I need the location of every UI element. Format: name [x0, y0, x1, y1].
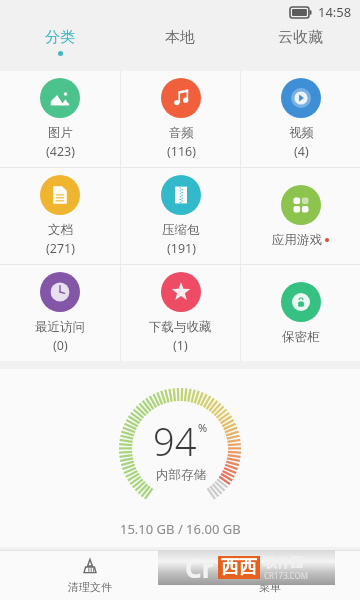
button[interactable]: 视频: [241, 71, 360, 167]
button[interactable]: 清理文件: [0, 551, 180, 600]
staticText: (1): [173, 337, 188, 354]
button[interactable]: 本地: [120, 24, 240, 60]
staticText: 94: [153, 415, 197, 467]
staticText: 图片: [48, 125, 73, 141]
staticText: (116): [167, 143, 196, 160]
button[interactable]: 文档: [0, 168, 120, 264]
staticText: 文档: [48, 222, 73, 238]
staticText: %: [198, 420, 208, 435]
staticText: 西西: [221, 556, 257, 579]
staticText: 本地: [165, 28, 195, 47]
button[interactable]: 下载与收藏: [121, 265, 240, 361]
staticText: Cr: [185, 550, 214, 585]
staticText: 14:58: [318, 3, 352, 21]
staticText: 压缩包: [162, 222, 200, 238]
staticText: 清理文件: [68, 580, 112, 594]
staticText: 视频: [289, 125, 314, 141]
staticText: 应用游戏: [272, 232, 322, 248]
staticText: 最近访问: [35, 319, 85, 335]
staticText: 云收藏: [278, 28, 323, 47]
staticText: 内部存储: [156, 467, 206, 483]
staticText: (423): [46, 143, 75, 160]
staticText: CR173.COM: [264, 570, 308, 581]
staticText: 软件园: [264, 554, 303, 570]
staticText: (0): [53, 337, 68, 354]
staticText: 保密柜: [282, 329, 320, 345]
staticText: (271): [46, 240, 75, 257]
staticText: 菜单: [259, 580, 281, 594]
staticText: 音频: [169, 125, 194, 141]
button[interactable]: 保密柜: [241, 265, 360, 361]
button[interactable]: 最近访问: [0, 265, 120, 361]
staticText: 15.10 GB / 16.00 GB: [120, 520, 241, 538]
button[interactable]: 分类: [0, 24, 120, 60]
staticText: 下载与收藏: [149, 319, 212, 335]
button[interactable]: 菜单: [180, 551, 360, 600]
button[interactable]: 云收藏: [240, 24, 360, 60]
staticText: (4): [294, 143, 309, 160]
staticText: (191): [167, 240, 196, 257]
button[interactable]: 压缩包: [121, 168, 240, 264]
button[interactable]: 应用游戏: [241, 168, 360, 264]
button[interactable]: 音频: [121, 71, 240, 167]
staticText: 分类: [45, 28, 75, 47]
button[interactable]: 图片: [0, 71, 120, 167]
